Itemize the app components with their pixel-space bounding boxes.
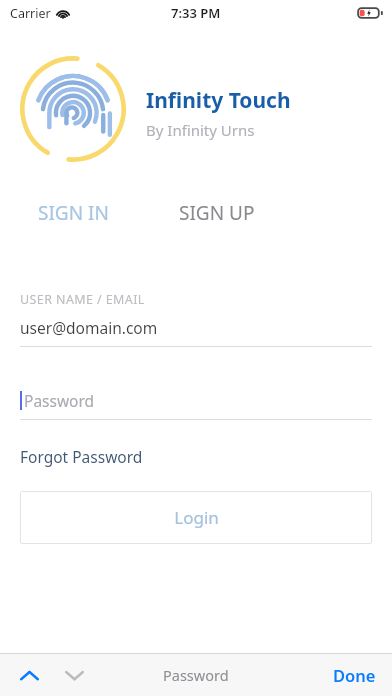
button[interactable]: Login [20, 491, 372, 544]
button[interactable]: Forgot Password [20, 442, 143, 471]
button[interactable]: Previous field [14, 664, 45, 687]
button[interactable]: SIGN IN [0, 192, 147, 234]
staticText: By Infinity Urns [146, 120, 255, 140]
staticText: user@domain.com [20, 317, 158, 338]
staticText: Carrier [10, 5, 51, 22]
button[interactable]: Done [317, 656, 392, 694]
button[interactable]: USER NAME / EMAIL [0, 291, 392, 347]
staticText: 7:33 PM [171, 4, 221, 22]
button[interactable]: Password [0, 390, 392, 420]
staticText: Infinity Touch [146, 86, 291, 115]
button[interactable]: SIGN UP [169, 192, 265, 234]
staticText: Password [24, 390, 95, 411]
staticText: Forgot Password [20, 446, 143, 467]
staticText: Done [333, 664, 376, 686]
staticText: SIGN IN [38, 200, 109, 226]
staticText: USER NAME / EMAIL [20, 291, 145, 308]
staticText: Login [174, 506, 219, 529]
staticText: SIGN UP [179, 200, 255, 226]
button[interactable]: Next field [59, 664, 90, 687]
staticText: Password [163, 665, 229, 685]
